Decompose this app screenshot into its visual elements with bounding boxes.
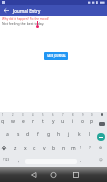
staticText: r: [32, 118, 35, 125]
staticText: Why did it happen? Fix the mood!: [2, 17, 49, 21]
staticText: e: [22, 118, 25, 125]
staticText: ?: [89, 145, 91, 151]
staticText: ⚙: [99, 146, 103, 150]
button[interactable]: [0, 112, 107, 167]
staticText: p: [90, 118, 94, 125]
staticText: j: [68, 131, 70, 138]
staticText: d: [26, 131, 30, 138]
staticText: m: [71, 145, 76, 152]
staticText: v: [43, 145, 46, 152]
staticText: 2: [12, 113, 14, 117]
staticText: Not feeling the best today.: [2, 21, 45, 26]
staticText: y: [52, 118, 55, 125]
staticText: 3: [22, 113, 24, 117]
staticText: f: [37, 131, 39, 138]
staticText: c: [33, 145, 36, 152]
button[interactable]: [0, 167, 35, 182]
staticText: 1: [2, 113, 4, 117]
staticText: l: [89, 131, 91, 138]
staticText: t: [42, 118, 44, 125]
staticText: z: [14, 145, 17, 152]
staticText: ?123: [3, 158, 10, 162]
staticText: w: [11, 118, 15, 125]
staticText: 5: [42, 113, 44, 117]
button[interactable]: [71, 167, 107, 182]
staticText: 8: [72, 113, 74, 117]
staticText: 6: [52, 113, 54, 117]
staticText: i: [72, 118, 74, 125]
staticText: q: [1, 118, 5, 125]
staticText: g: [47, 131, 51, 138]
staticText: s: [17, 131, 20, 138]
staticText: Journal Entry: [13, 8, 41, 14]
staticText: a: [6, 131, 9, 138]
staticText: k: [78, 131, 81, 138]
button[interactable]: SAVE JOURNAL: [44, 52, 68, 60]
staticText: 0: [91, 113, 93, 117]
staticText: b: [52, 145, 56, 152]
button[interactable]: [35, 167, 71, 182]
staticText: 9: [82, 113, 84, 117]
staticText: u: [61, 118, 65, 125]
staticText: h: [57, 131, 61, 138]
staticText: 7: [62, 113, 64, 117]
button[interactable]: [97, 133, 105, 141]
staticText: o: [81, 118, 85, 125]
staticText: !: [80, 145, 82, 151]
staticText: SAVE JOURNAL: [47, 54, 66, 58]
button[interactable]: [2, 6, 10, 14]
staticText: 4: [32, 113, 34, 117]
staticText: ,: [18, 157, 20, 163]
button[interactable]: [99, 122, 105, 126]
staticText: x: [24, 145, 27, 152]
staticText: ☺: [99, 158, 103, 162]
staticText: n: [62, 145, 66, 152]
staticText: .: [80, 157, 82, 163]
